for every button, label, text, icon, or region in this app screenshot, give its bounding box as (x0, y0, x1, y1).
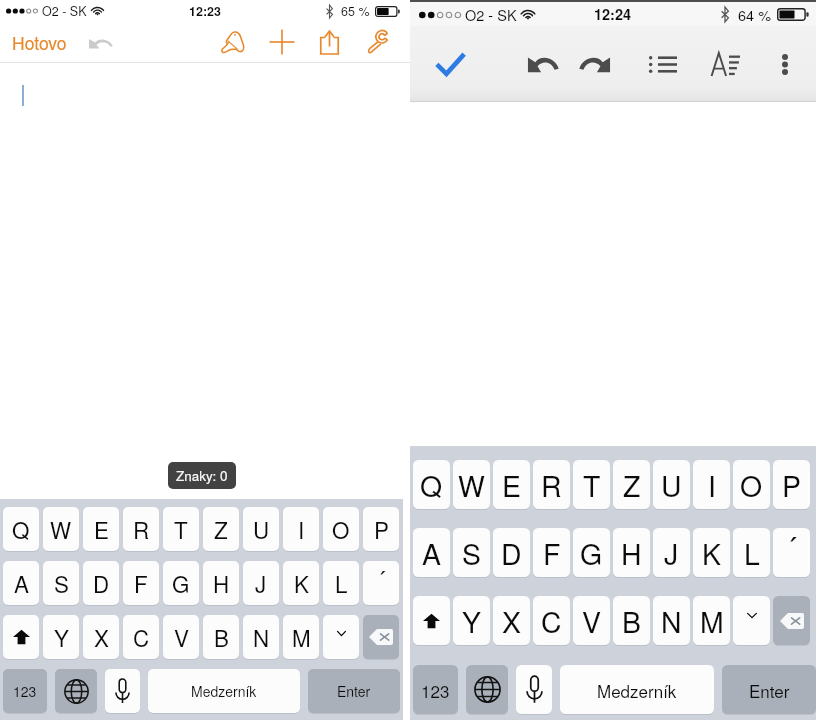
button[interactable]: B (613, 596, 650, 645)
button[interactable]: Hotovo (10, 26, 69, 59)
button[interactable]: D (493, 528, 530, 577)
staticText: P (782, 464, 801, 505)
button[interactable]: Bullet list (639, 40, 687, 88)
button[interactable]: T (573, 460, 610, 509)
button[interactable]: R (533, 460, 570, 509)
button[interactable]: Markup (210, 24, 256, 60)
button[interactable]: J (653, 528, 690, 577)
button[interactable]: Z (613, 460, 650, 509)
staticText: Y (462, 600, 481, 641)
button[interactable]: Redo (571, 40, 619, 88)
button[interactable]: G (573, 528, 610, 577)
button[interactable]: Done (426, 39, 475, 88)
button[interactable]: F (533, 528, 570, 577)
staticText: Q (420, 464, 443, 505)
button[interactable]: X (493, 596, 530, 645)
button[interactable]: D (83, 561, 119, 605)
button[interactable]: R (123, 507, 159, 551)
button[interactable]: W (43, 507, 79, 551)
button[interactable]: Znaky: 0 (168, 462, 236, 489)
button[interactable]: Q (413, 460, 450, 509)
button[interactable]: Medzerník (148, 669, 300, 713)
staticText: B (214, 621, 229, 653)
button[interactable]: O (733, 460, 770, 509)
button[interactable]: M (283, 615, 319, 659)
button[interactable]: ´ (363, 561, 399, 605)
button[interactable]: Undo (519, 40, 567, 88)
button[interactable]: G (163, 561, 199, 605)
button[interactable]: X (83, 615, 119, 659)
button[interactable]: Q (3, 507, 39, 551)
button[interactable]: Share (306, 24, 352, 60)
staticText: F (543, 532, 561, 573)
button[interactable]: Dictate (516, 665, 552, 714)
button[interactable]: Dictate (105, 669, 140, 713)
button[interactable]: A (3, 561, 39, 605)
button[interactable]: E (83, 507, 119, 551)
button[interactable]: Y (453, 596, 490, 645)
button[interactable]: F (123, 561, 159, 605)
button[interactable]: P (363, 507, 399, 551)
button[interactable]: Backspace (773, 596, 810, 645)
button[interactable]: Backspace (363, 615, 399, 659)
button[interactable]: Switch language (466, 665, 508, 714)
button[interactable]: I (283, 507, 319, 551)
staticText: K (702, 532, 721, 573)
button[interactable]: C (533, 596, 570, 645)
staticText: Hotovo (12, 30, 67, 55)
button[interactable]: Undo (86, 31, 114, 55)
button[interactable]: Y (43, 615, 79, 659)
button[interactable]: K (283, 561, 319, 605)
button[interactable]: L (323, 561, 359, 605)
button[interactable]: P (773, 460, 810, 509)
button[interactable]: I (693, 460, 730, 509)
button[interactable]: V (573, 596, 610, 645)
button[interactable]: N (243, 615, 279, 659)
button[interactable]: Caron (323, 615, 359, 659)
button[interactable]: Format text (701, 40, 749, 88)
button[interactable]: Shift (413, 596, 450, 645)
staticText: W (50, 513, 72, 545)
button[interactable]: Switch language (55, 669, 97, 713)
button[interactable]: B (203, 615, 239, 659)
button[interactable]: Medzerník (560, 665, 714, 714)
button[interactable]: U (243, 507, 279, 551)
button[interactable]: L (733, 528, 770, 577)
button[interactable]: More options (764, 40, 806, 88)
button[interactable]: U (653, 460, 690, 509)
button[interactable]: W (453, 460, 490, 509)
button[interactable]: K (693, 528, 730, 577)
button[interactable]: 123 (413, 665, 458, 714)
staticText: O2 - SK (42, 2, 87, 20)
button[interactable]: Z (203, 507, 239, 551)
staticText: M (292, 621, 311, 653)
button[interactable]: V (163, 615, 199, 659)
button[interactable]: O (323, 507, 359, 551)
staticText: J (664, 532, 679, 573)
staticText: K (294, 567, 309, 599)
button[interactable]: A (413, 528, 450, 577)
staticText: R (541, 464, 562, 505)
button[interactable]: T (163, 507, 199, 551)
button[interactable]: Settings (354, 24, 400, 60)
button[interactable]: M (693, 596, 730, 645)
button[interactable]: S (43, 561, 79, 605)
button[interactable]: S (453, 528, 490, 577)
staticText: N (661, 600, 682, 641)
button[interactable]: Add (259, 24, 305, 60)
button[interactable]: Shift (3, 615, 39, 659)
button[interactable]: ´ (773, 528, 810, 577)
staticText: J (255, 567, 267, 599)
button[interactable]: 123 (3, 669, 47, 713)
staticText: D (501, 532, 522, 573)
button[interactable]: J (243, 561, 279, 605)
button[interactable]: H (613, 528, 650, 577)
staticText: O2 - SK (465, 4, 517, 25)
button[interactable]: H (203, 561, 239, 605)
button[interactable]: Enter (722, 665, 816, 714)
button[interactable]: Enter (308, 669, 400, 713)
button[interactable]: Caron (733, 596, 770, 645)
button[interactable]: N (653, 596, 690, 645)
button[interactable]: E (493, 460, 530, 509)
button[interactable]: C (123, 615, 159, 659)
